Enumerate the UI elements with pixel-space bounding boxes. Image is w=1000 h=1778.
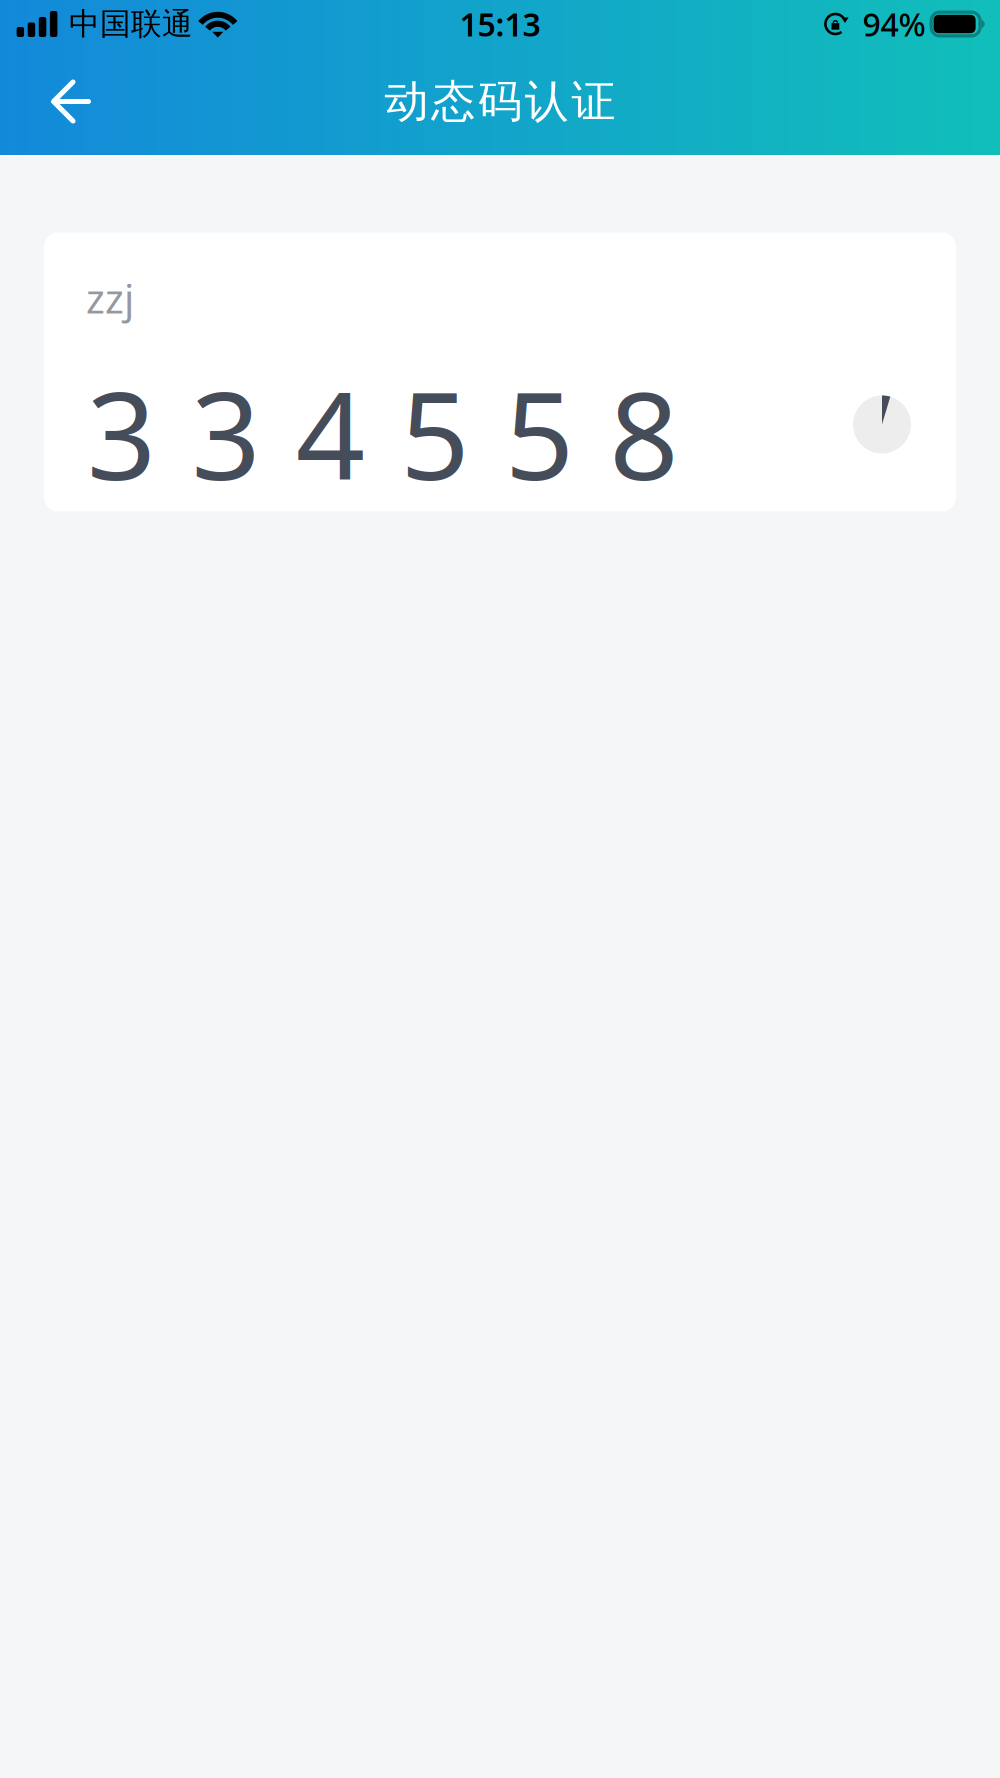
staticText: 动态码认证 — [384, 74, 616, 128]
staticText: 5 — [400, 352, 469, 513]
staticText: 3 — [87, 352, 156, 513]
staticText: 5 — [505, 352, 574, 513]
staticText: 中国联通 — [69, 5, 193, 43]
staticText: 15:13 — [459, 3, 540, 45]
button[interactable]: Back — [0, 53, 119, 149]
staticText: zzj — [86, 271, 134, 324]
staticText: 8 — [609, 352, 678, 513]
staticText: 3 — [191, 352, 260, 513]
button[interactable]: zzj — [44, 233, 956, 512]
staticText: 4 — [296, 352, 365, 513]
staticText: 94% — [863, 3, 926, 45]
